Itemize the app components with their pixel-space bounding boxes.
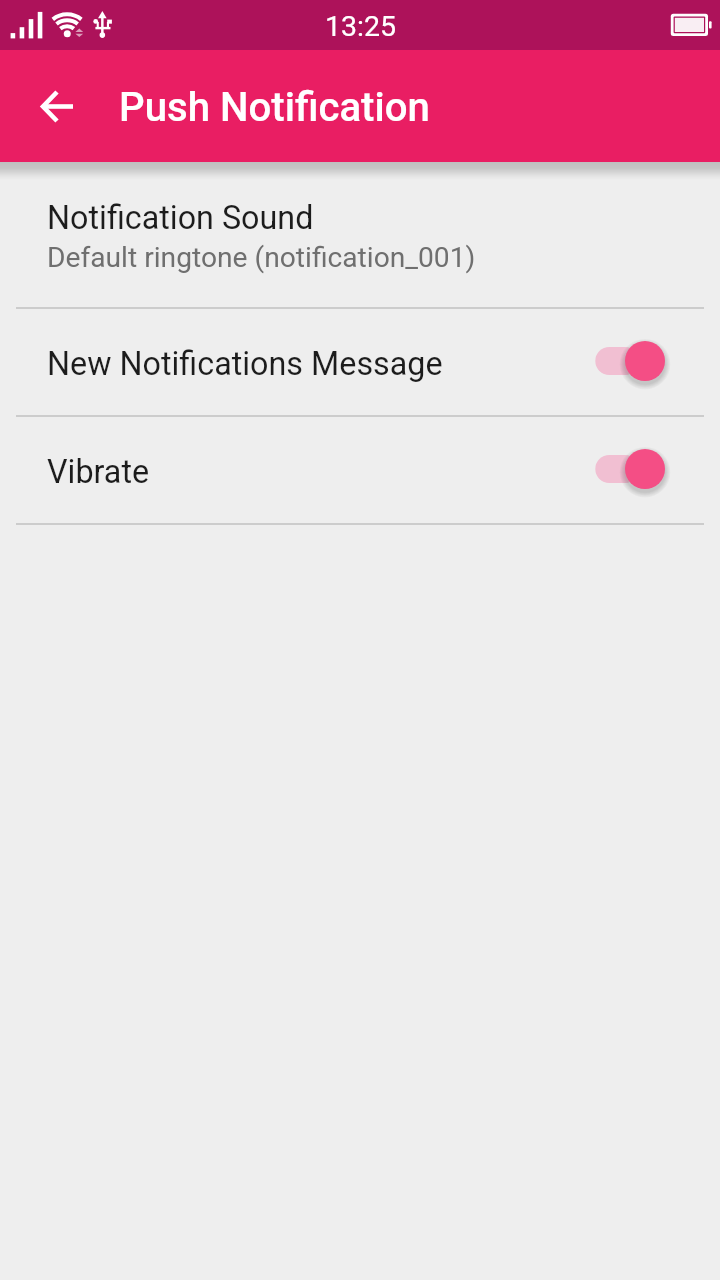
staticText: Notification Sound <box>47 199 314 237</box>
button[interactable]: Notification Sound <box>0 180 720 307</box>
staticText: Push Notification <box>119 84 430 131</box>
staticText: 13:25 <box>325 10 396 43</box>
staticText: New Notifications Message <box>47 345 443 383</box>
button[interactable]: New Notifications Message toggle, on <box>595 337 665 385</box>
button[interactable]: Vibrate toggle, on <box>595 445 665 493</box>
button[interactable]: New Notifications Message <box>0 307 720 415</box>
button[interactable]: Vibrate <box>0 415 720 523</box>
staticText: Vibrate <box>47 453 150 491</box>
button[interactable]: Navigate up <box>26 74 90 138</box>
staticText: Default ringtone (notification_001) <box>47 241 476 274</box>
